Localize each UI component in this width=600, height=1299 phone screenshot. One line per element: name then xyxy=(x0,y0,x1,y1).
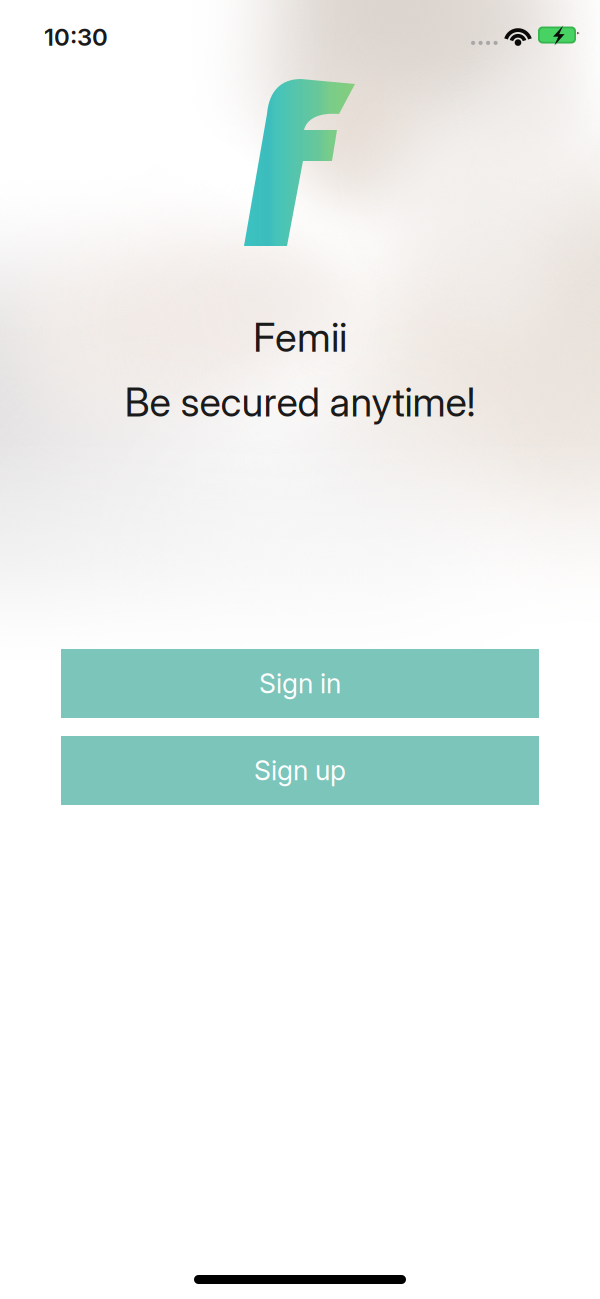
staticText: Sign up xyxy=(254,754,346,787)
staticText: Be secured anytime! xyxy=(124,378,475,426)
button[interactable]: Sign up xyxy=(61,736,539,805)
staticText: Femii xyxy=(253,313,347,361)
button[interactable]: Sign in xyxy=(61,649,539,718)
staticText: Sign in xyxy=(259,667,341,700)
staticText: 10:30 xyxy=(44,22,108,51)
